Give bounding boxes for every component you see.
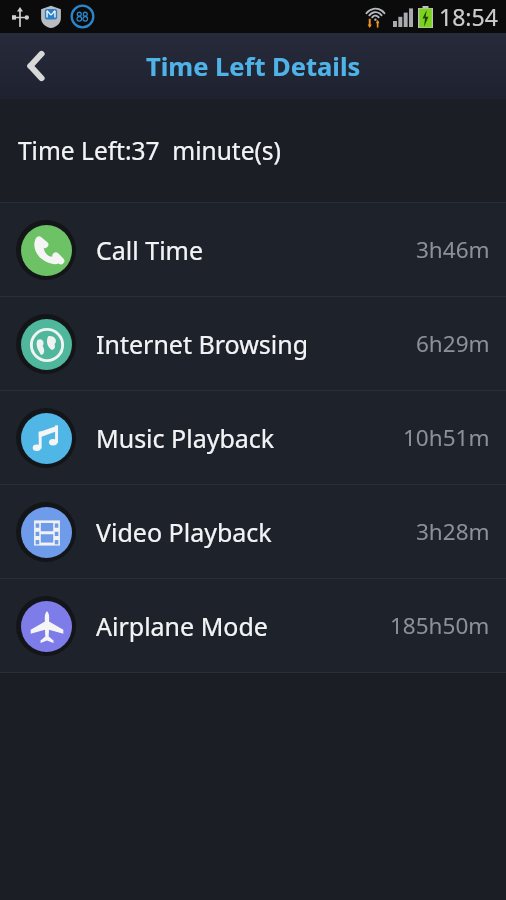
- staticText: Airplane Mode: [96, 609, 268, 643]
- staticText: Time Left:37 minute(s): [18, 134, 281, 167]
- button[interactable]: Back: [0, 33, 72, 99]
- staticText: Internet Browsing: [96, 327, 309, 361]
- staticText: 10h51m: [403, 422, 490, 453]
- staticText: 18:54: [439, 1, 498, 32]
- staticText: 185h50m: [390, 610, 490, 641]
- button[interactable]: Call Time: [0, 203, 506, 296]
- button[interactable]: Internet Browsing: [0, 297, 506, 390]
- button[interactable]: Music Playback: [0, 391, 506, 484]
- staticText: Video Playback: [96, 515, 272, 549]
- staticText: 3h46m: [416, 234, 490, 265]
- staticText: 6h29m: [416, 328, 490, 359]
- button[interactable]: Airplane Mode: [0, 579, 506, 672]
- staticText: Music Playback: [96, 421, 275, 455]
- staticText: Call Time: [96, 233, 204, 267]
- staticText: 3h28m: [416, 516, 490, 547]
- staticText: Time Left Details: [146, 49, 361, 84]
- button[interactable]: Video Playback: [0, 485, 506, 578]
